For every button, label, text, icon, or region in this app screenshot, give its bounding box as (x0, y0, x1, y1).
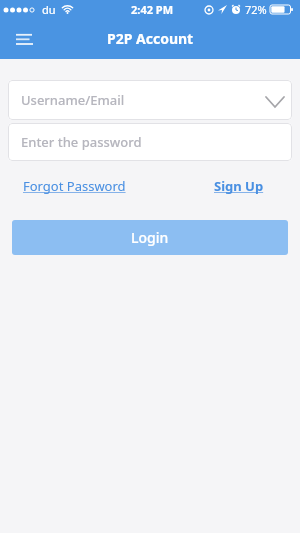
staticText: Sign Up (214, 177, 264, 195)
button[interactable]: Forgot Password (23, 177, 126, 195)
staticText: Enter the password (21, 133, 142, 151)
button[interactable]: Username/Email (8, 80, 292, 120)
staticText: du (42, 2, 56, 17)
button[interactable]: Login (12, 220, 288, 255)
staticText: P2P Account (107, 29, 194, 48)
staticText: Username/Email (21, 91, 125, 109)
staticText: 2:42 PM (131, 2, 174, 17)
button[interactable]: Sign Up (214, 177, 264, 195)
button[interactable] (8, 23, 40, 55)
button[interactable]: Enter the password (8, 123, 292, 161)
staticText: 72% (245, 2, 267, 17)
staticText: Forgot Password (23, 177, 126, 195)
staticText: Login (131, 228, 169, 247)
